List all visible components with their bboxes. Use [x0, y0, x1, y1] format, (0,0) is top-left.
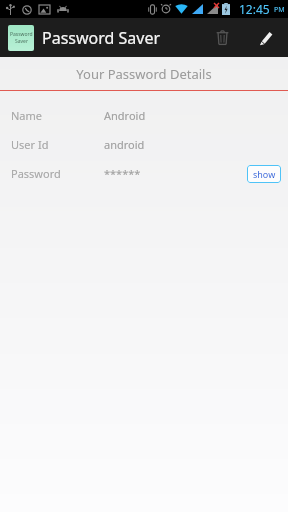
staticText: User Id: [11, 137, 49, 152]
staticText: Saver: [15, 38, 28, 45]
button[interactable]: show: [247, 165, 281, 183]
button[interactable]: Edit: [244, 18, 288, 57]
button[interactable]: User Id: [0, 130, 288, 159]
staticText: Password: [10, 31, 33, 38]
staticText: Name: [11, 108, 43, 123]
staticText: show: [253, 168, 276, 180]
staticText: Android: [104, 108, 146, 123]
staticText: 12:45: [239, 1, 270, 17]
staticText: ******: [104, 166, 141, 181]
staticText: Password Saver: [42, 27, 161, 49]
button[interactable]: Delete: [200, 18, 244, 57]
staticText: Password: [11, 166, 61, 181]
button[interactable]: Name: [0, 101, 288, 130]
staticText: Your Password Details: [76, 65, 212, 83]
button[interactable]: App icon: [8, 25, 34, 51]
staticText: android: [104, 137, 145, 152]
staticText: PM: [274, 5, 285, 15]
button[interactable]: Password: [0, 159, 288, 188]
